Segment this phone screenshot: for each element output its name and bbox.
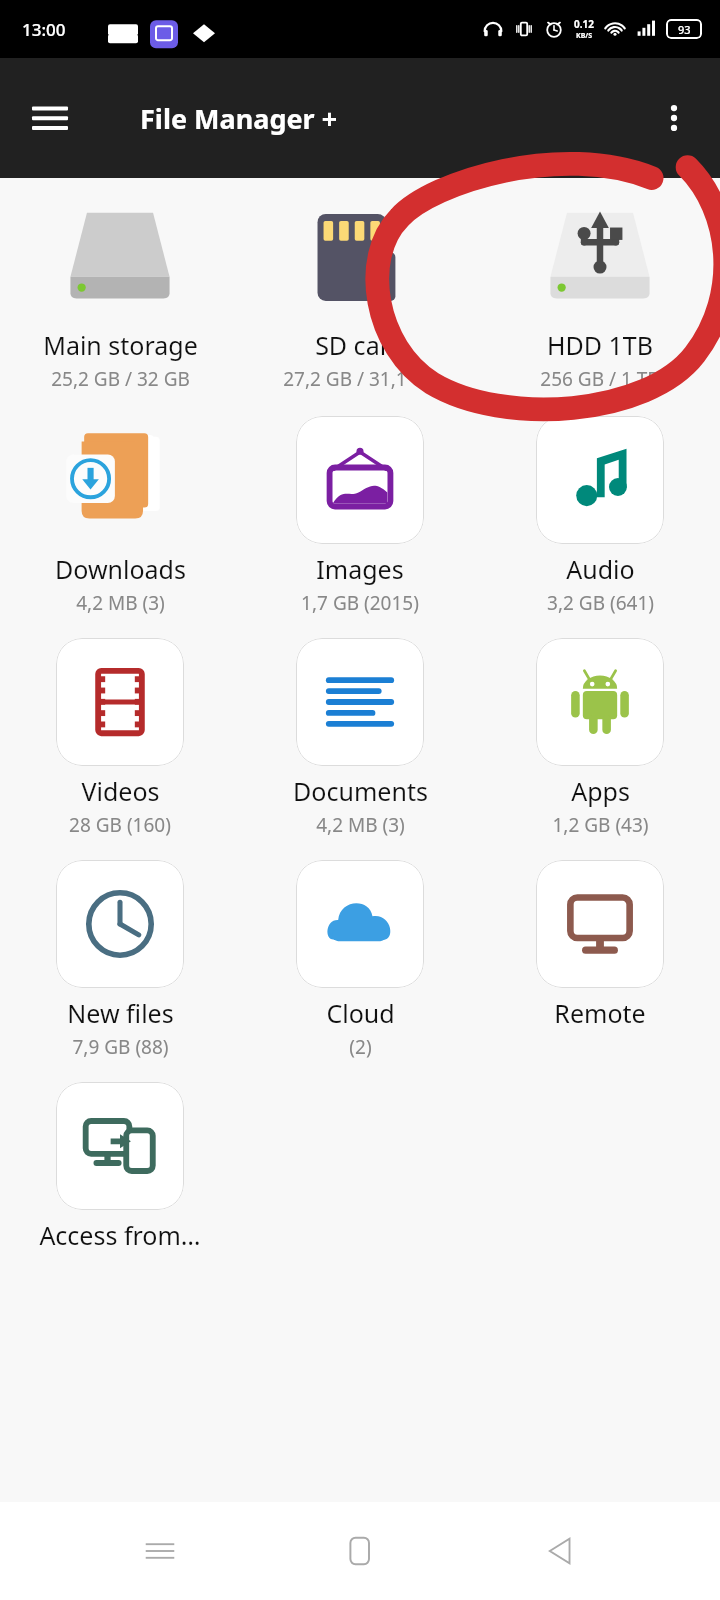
button[interactable]: HDD 1TB [480,192,720,396]
staticText: 25,2 GB / 32 GB [51,366,190,392]
button[interactable]: Downloads [0,414,240,618]
staticText: Images [316,552,404,586]
staticText: New files [67,996,174,1030]
staticText: File Manager + [140,100,338,137]
staticText: Remote [554,996,646,1030]
staticText: Videos [81,774,160,808]
staticText: (2) [349,1034,372,1060]
button[interactable]: Back [520,1511,600,1591]
button[interactable]: Open navigation menu [18,86,82,150]
staticText: Main storage [43,328,198,362]
staticText: Downloads [55,552,186,586]
button[interactable]: Home [320,1511,400,1591]
staticText: 4,2 MB (3) [76,590,165,616]
button[interactable]: SD card [240,192,480,396]
button[interactable]: Cloud [240,858,480,1062]
staticText: HDD 1TB [547,328,653,362]
staticText: Cloud [326,996,395,1030]
staticText: 1,2 GB (43) [552,812,649,838]
button[interactable]: Apps [480,636,720,840]
staticText: 256 GB / 1 TB [540,366,660,392]
button[interactable]: Videos [0,636,240,840]
staticText: KB/S [576,31,593,41]
button[interactable]: Audio [480,414,720,618]
staticText: 28 GB (160) [69,812,171,838]
button[interactable]: Recent apps [120,1511,200,1591]
staticText: Documents [293,774,428,808]
staticText: 3,2 GB (641) [547,590,654,616]
staticText: 0.12 [574,17,594,31]
staticText: 7,9 GB (88) [72,1034,169,1060]
button[interactable]: New files [0,858,240,1062]
button[interactable]: Documents [240,636,480,840]
staticText: Audio [566,552,635,586]
button[interactable]: Main storage [0,192,240,396]
button[interactable]: More options [644,88,704,148]
button[interactable]: Images [240,414,480,618]
staticText: Access from… [39,1218,201,1252]
staticText: 4,2 MB (3) [316,812,405,838]
staticText: 13:00 [22,18,66,41]
staticText: SD card [315,328,405,362]
staticText: Apps [571,774,630,808]
staticText: 27,2 GB / 31,1 GB [283,366,438,392]
button[interactable]: Access from… [0,1080,240,1254]
staticText: 93 [678,22,691,37]
button[interactable]: Remote [480,858,720,1032]
staticText: 1,7 GB (2015) [301,590,419,616]
